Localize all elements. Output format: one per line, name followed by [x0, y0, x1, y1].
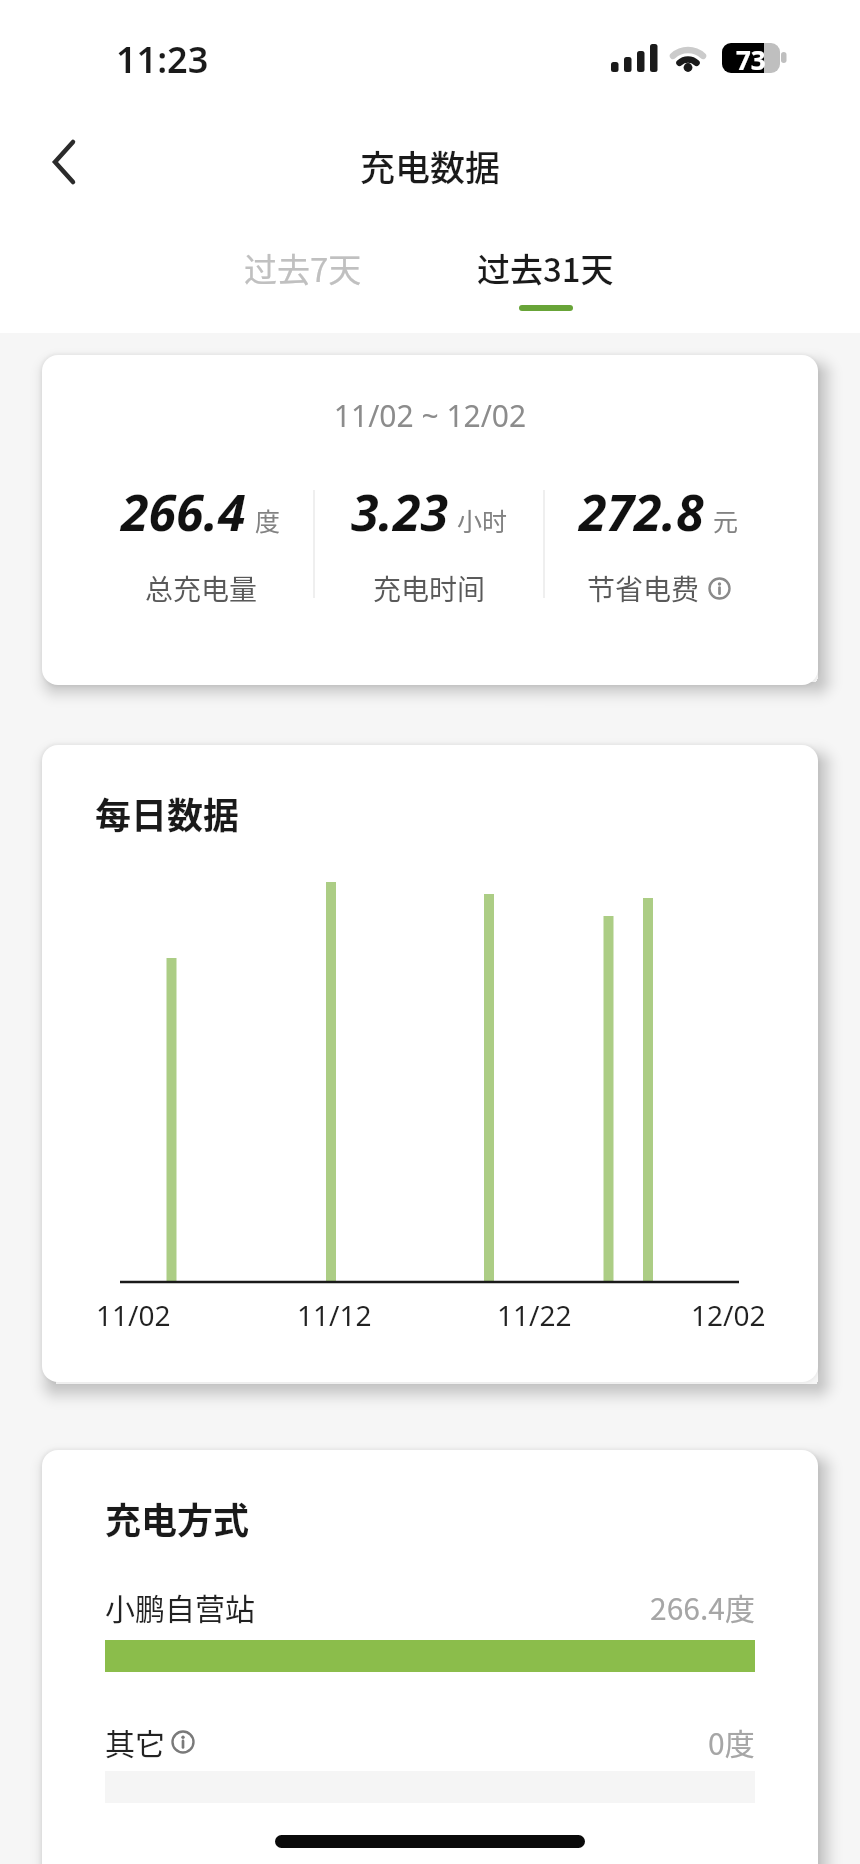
staticText: 11/02 [96, 1296, 171, 1334]
staticText: 11/22 [497, 1296, 572, 1334]
staticText: 度 [255, 502, 281, 538]
staticText: 小时 [457, 502, 508, 538]
staticText: 其它 [105, 1720, 165, 1763]
staticText: 总充电量 [145, 568, 258, 609]
button[interactable] [708, 577, 731, 600]
staticText: 266.4度 [650, 1585, 755, 1628]
staticText: 充电数据 [360, 140, 501, 188]
staticText: 小鹏自营站 [105, 1585, 255, 1628]
button[interactable] [34, 132, 94, 192]
staticText: 节省电费 [587, 568, 700, 609]
staticText: 过去31天 [477, 244, 614, 292]
staticText: 每日数据 [95, 787, 240, 839]
staticText: 266.4 [121, 478, 246, 546]
button[interactable] [171, 1730, 195, 1754]
staticText: 12/02 [691, 1296, 766, 1334]
staticText: 73 [736, 42, 766, 74]
staticText: 11/12 [297, 1296, 372, 1334]
staticText: 3.23 [351, 478, 448, 546]
button[interactable]: 过去7天 [200, 238, 405, 298]
staticText: 过去7天 [244, 244, 362, 292]
staticText: 11:23 [116, 35, 209, 84]
staticText: 充电时间 [373, 568, 486, 609]
button[interactable]: 过去31天 [443, 238, 648, 298]
staticText: 272.8 [579, 478, 704, 546]
staticText: 充电方式 [105, 1492, 250, 1544]
staticText: 11/02 ~ 12/02 [42, 395, 818, 436]
staticText: 0度 [708, 1720, 755, 1763]
staticText: 元 [713, 502, 739, 538]
